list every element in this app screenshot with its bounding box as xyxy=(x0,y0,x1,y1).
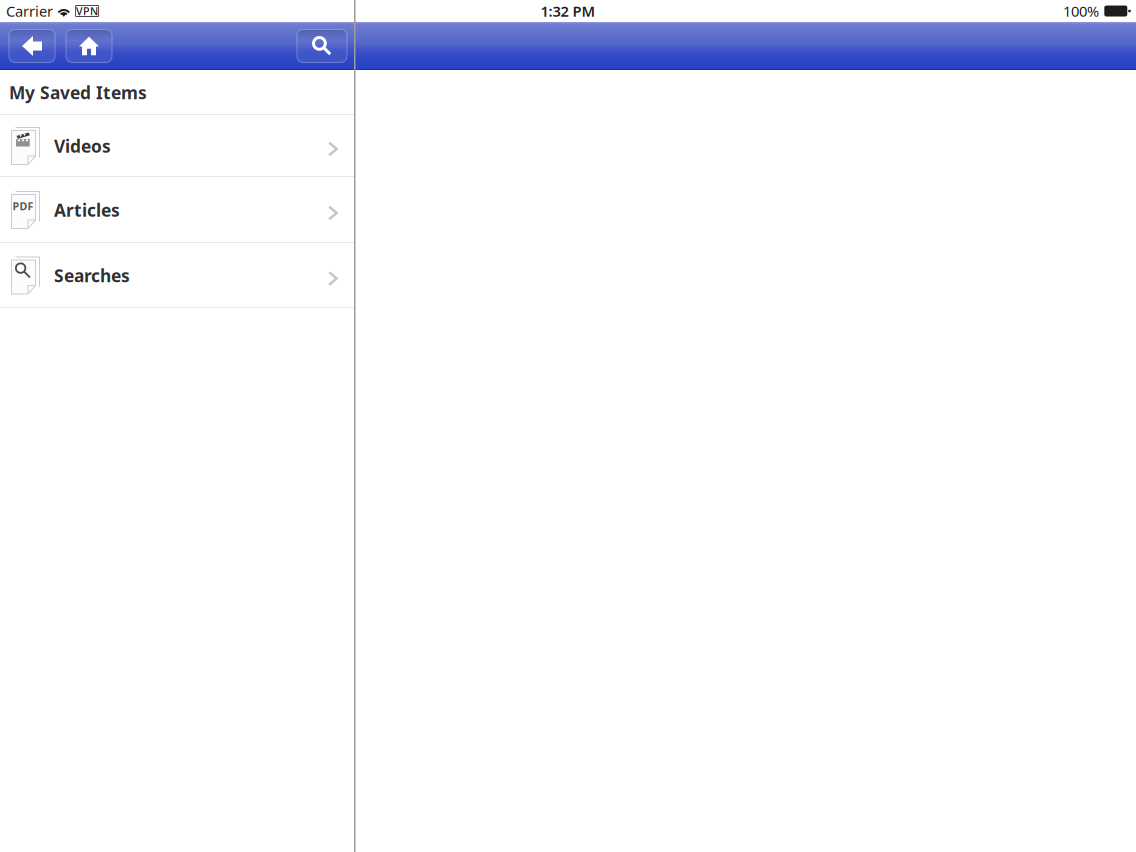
button[interactable]: Search xyxy=(297,29,347,62)
staticText: Carrier xyxy=(6,1,53,21)
button[interactable]: PDF xyxy=(0,177,354,243)
button[interactable]: Videos xyxy=(0,115,354,177)
button[interactable]: Back xyxy=(9,29,55,62)
staticText: 100% xyxy=(1063,1,1099,21)
staticText: Searches xyxy=(54,264,130,287)
button[interactable]: Home xyxy=(66,29,112,62)
staticText: 1:32 PM xyxy=(540,1,595,21)
staticText: Videos xyxy=(54,134,111,157)
staticText: My Saved Items xyxy=(9,81,147,104)
staticText: VPN xyxy=(76,4,98,18)
staticText: PDF xyxy=(12,199,33,213)
staticText: Articles xyxy=(54,198,120,221)
button[interactable]: Searches xyxy=(0,243,354,308)
